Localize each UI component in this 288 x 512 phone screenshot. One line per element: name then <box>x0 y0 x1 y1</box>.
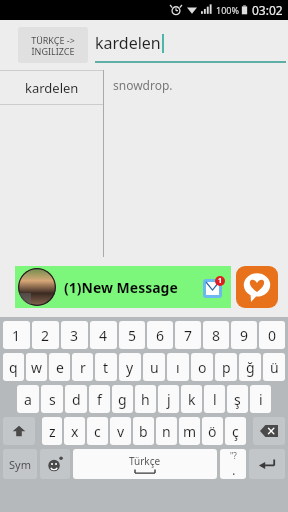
button[interactable]: ğ <box>239 353 261 381</box>
staticText: q <box>9 358 18 377</box>
staticText: h <box>141 390 150 409</box>
button[interactable]: Open app <box>236 266 278 308</box>
button[interactable]: 1 <box>3 321 30 349</box>
staticText: a <box>24 390 32 409</box>
staticText: 4 <box>99 326 108 345</box>
staticText: n <box>162 422 171 441</box>
staticText: y <box>126 358 134 377</box>
button[interactable]: Backspace <box>253 417 285 445</box>
button[interactable]: b <box>133 417 154 445</box>
button[interactable]: f <box>89 385 110 413</box>
button[interactable]: y <box>119 353 141 381</box>
staticText: ş <box>234 390 241 409</box>
button[interactable]: s <box>41 385 63 413</box>
button[interactable]: 7 <box>175 321 201 349</box>
button[interactable]: h <box>135 385 156 413</box>
button[interactable]: 9 <box>231 321 257 349</box>
staticText: w <box>31 358 43 377</box>
button[interactable]: kardelen <box>95 20 286 70</box>
staticText: d <box>72 390 81 409</box>
button[interactable]: TÜRKÇE -> İNGILIZCE <box>18 27 88 63</box>
button[interactable]: Sym <box>3 449 37 479</box>
button[interactable]: z <box>42 417 62 445</box>
staticText: Türkçe <box>129 454 161 468</box>
staticText: 100% <box>216 4 239 16</box>
button[interactable]: r <box>72 353 93 381</box>
button[interactable]: ü <box>263 353 285 381</box>
button[interactable]: d <box>65 385 87 413</box>
button[interactable]: ş <box>227 385 248 413</box>
staticText: p <box>222 358 231 377</box>
staticText: 1 <box>12 326 21 345</box>
button[interactable]: i <box>250 385 271 413</box>
button[interactable]: ö <box>202 417 223 445</box>
staticText: ğ <box>246 358 255 377</box>
staticText: 9 <box>240 326 249 345</box>
staticText: "? <box>230 450 237 461</box>
button[interactable]: o <box>191 353 213 381</box>
staticText: 1 <box>218 276 223 286</box>
staticText: 0 <box>268 326 277 345</box>
button[interactable]: 5 <box>119 321 145 349</box>
button[interactable]: "? <box>220 449 246 479</box>
button[interactable]: k <box>181 385 202 413</box>
button[interactable]: p <box>215 353 237 381</box>
button[interactable]: 3 <box>61 321 88 349</box>
button[interactable]: Türkçe <box>73 449 217 479</box>
button[interactable]: u <box>143 353 165 381</box>
button[interactable]: (1)New Message <box>15 266 231 308</box>
button[interactable]: 8 <box>203 321 229 349</box>
staticText: 03:02 <box>252 2 283 18</box>
button[interactable]: j <box>158 385 179 413</box>
staticText: 2 <box>41 326 50 345</box>
staticText: 8 <box>212 326 221 345</box>
staticText: t <box>103 358 109 377</box>
staticText: ı <box>176 358 180 377</box>
staticText: 3 <box>70 326 79 345</box>
button[interactable]: n <box>156 417 177 445</box>
staticText: ö <box>208 422 217 441</box>
staticText: g <box>118 390 127 409</box>
button[interactable]: g <box>112 385 133 413</box>
staticText: 6 <box>156 326 165 345</box>
button[interactable]: 0 <box>259 321 285 349</box>
button[interactable]: 4 <box>90 321 117 349</box>
staticText: u <box>150 358 159 377</box>
staticText: (1)New Message <box>64 278 178 297</box>
staticText: kardelen <box>95 32 161 54</box>
button[interactable]: m <box>179 417 200 445</box>
button[interactable]: a <box>17 385 39 413</box>
button[interactable]: 2 <box>32 321 59 349</box>
button[interactable]: Emoji and settings <box>40 449 70 479</box>
button[interactable]: ı <box>167 353 189 381</box>
button[interactable]: v <box>110 417 131 445</box>
staticText: k <box>188 390 196 409</box>
staticText: ü <box>270 358 279 377</box>
button[interactable]: ç <box>225 417 246 445</box>
staticText: i <box>259 390 263 409</box>
staticText: c <box>94 422 101 441</box>
staticText: ç <box>232 422 239 441</box>
button[interactable]: kardelen <box>0 71 103 104</box>
staticText: o <box>198 358 207 377</box>
staticText: x <box>71 422 79 441</box>
button[interactable]: Enter <box>249 449 285 479</box>
staticText: e <box>56 358 64 377</box>
button[interactable]: x <box>64 417 85 445</box>
staticText: b <box>139 422 148 441</box>
button[interactable]: q <box>3 353 24 381</box>
button[interactable]: Shift <box>3 417 35 445</box>
button[interactable]: e <box>49 353 70 381</box>
staticText: snowdrop. <box>113 77 173 93</box>
button[interactable]: 6 <box>147 321 173 349</box>
staticText: f <box>97 390 102 409</box>
staticText: m <box>183 422 197 441</box>
staticText: . <box>232 461 236 479</box>
staticText: l <box>213 390 217 409</box>
button[interactable]: c <box>87 417 108 445</box>
button[interactable]: t <box>95 353 117 381</box>
button[interactable]: w <box>26 353 47 381</box>
staticText: TÜRKÇE -> İNGILIZCE <box>31 34 75 57</box>
staticText: 7 <box>184 326 193 345</box>
button[interactable]: l <box>204 385 225 413</box>
